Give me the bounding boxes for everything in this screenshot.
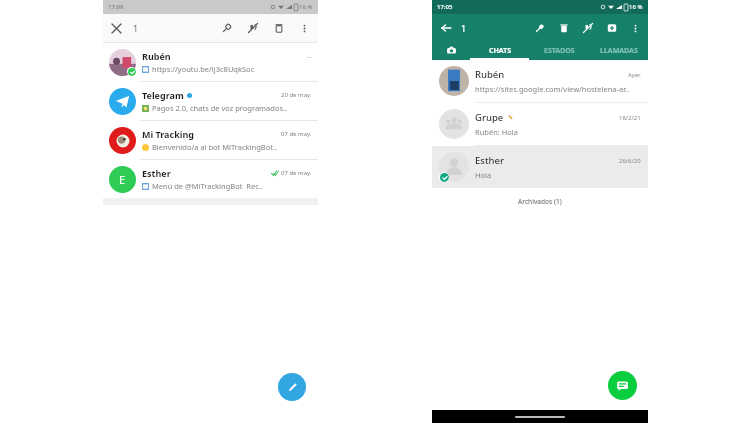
staticText: Hola xyxy=(475,170,492,180)
staticText: E xyxy=(119,172,126,187)
button[interactable]: Camera xyxy=(432,41,470,60)
staticText: ... xyxy=(307,52,312,60)
button[interactable]: Rubén xyxy=(432,60,648,102)
button[interactable]: Esther xyxy=(432,146,648,188)
button[interactable]: E xyxy=(103,160,318,198)
button[interactable]: Grupe xyxy=(432,103,648,145)
button[interactable]: LLAMADAS xyxy=(589,41,648,60)
staticText: Rubén xyxy=(142,50,171,62)
button[interactable]: More options xyxy=(292,16,316,40)
button[interactable]: Mute xyxy=(240,15,266,41)
staticText: Grupe xyxy=(475,111,504,124)
button[interactable]: CHATS xyxy=(470,41,530,60)
staticText: 16 % xyxy=(629,3,643,11)
button[interactable]: Rubén xyxy=(103,43,318,81)
staticText: 17:05 xyxy=(437,3,453,11)
staticText: Pagos 2.0, chats de voz programados.. xyxy=(152,103,288,113)
button[interactable]: New chat xyxy=(608,371,637,400)
staticText: https://youtu.be/lj3c8UqkSoc xyxy=(152,64,255,74)
staticText: Esther xyxy=(475,154,504,167)
button[interactable]: Delete xyxy=(552,16,576,40)
staticText: Mi Tracking xyxy=(142,128,194,140)
staticText: 20 de may. xyxy=(281,91,312,99)
button[interactable]: ESTADOS xyxy=(530,41,589,60)
staticText: 1 xyxy=(461,22,467,34)
staticText: Archivados (1) xyxy=(518,197,562,206)
staticText: 18/2/21 xyxy=(619,114,641,122)
button[interactable]: Pin xyxy=(528,16,552,40)
button[interactable]: Back xyxy=(434,16,458,40)
staticText: Ayer xyxy=(628,71,641,79)
button[interactable]: Compose xyxy=(278,373,306,401)
staticText: 07 de may. xyxy=(281,169,312,177)
staticText: CHATS xyxy=(489,46,512,56)
button[interactable]: Archive xyxy=(600,16,624,40)
staticText: Menú de @MiTrackingBot Rec.. xyxy=(152,181,263,191)
staticText: https://sites.google.com/view/hostelena-… xyxy=(475,84,630,94)
staticText: 17:09 xyxy=(108,3,124,11)
staticText: LLAMADAS xyxy=(600,46,638,56)
button[interactable]: Pin xyxy=(214,15,240,41)
button[interactable]: Telegram xyxy=(103,82,318,120)
button[interactable]: Mi Tracking xyxy=(103,121,318,159)
staticText: Rubén: Hola xyxy=(475,127,518,137)
staticText: Bienvenido/a al bot MiTrackingBot.. xyxy=(152,142,277,152)
staticText: Telegram xyxy=(142,89,184,101)
staticText: 1 xyxy=(133,22,139,34)
staticText: 16 % xyxy=(299,3,313,11)
button[interactable]: More options xyxy=(624,17,646,39)
staticText: Esther xyxy=(142,167,171,179)
button[interactable]: Mute xyxy=(576,16,600,40)
button[interactable]: Delete xyxy=(266,15,292,41)
staticText: 26/6/20 xyxy=(619,157,641,165)
staticText: ESTADOS xyxy=(544,46,575,56)
staticText: Rubén xyxy=(475,68,505,81)
staticText: 07 de may. xyxy=(281,130,312,138)
button[interactable]: Close xyxy=(103,15,129,41)
